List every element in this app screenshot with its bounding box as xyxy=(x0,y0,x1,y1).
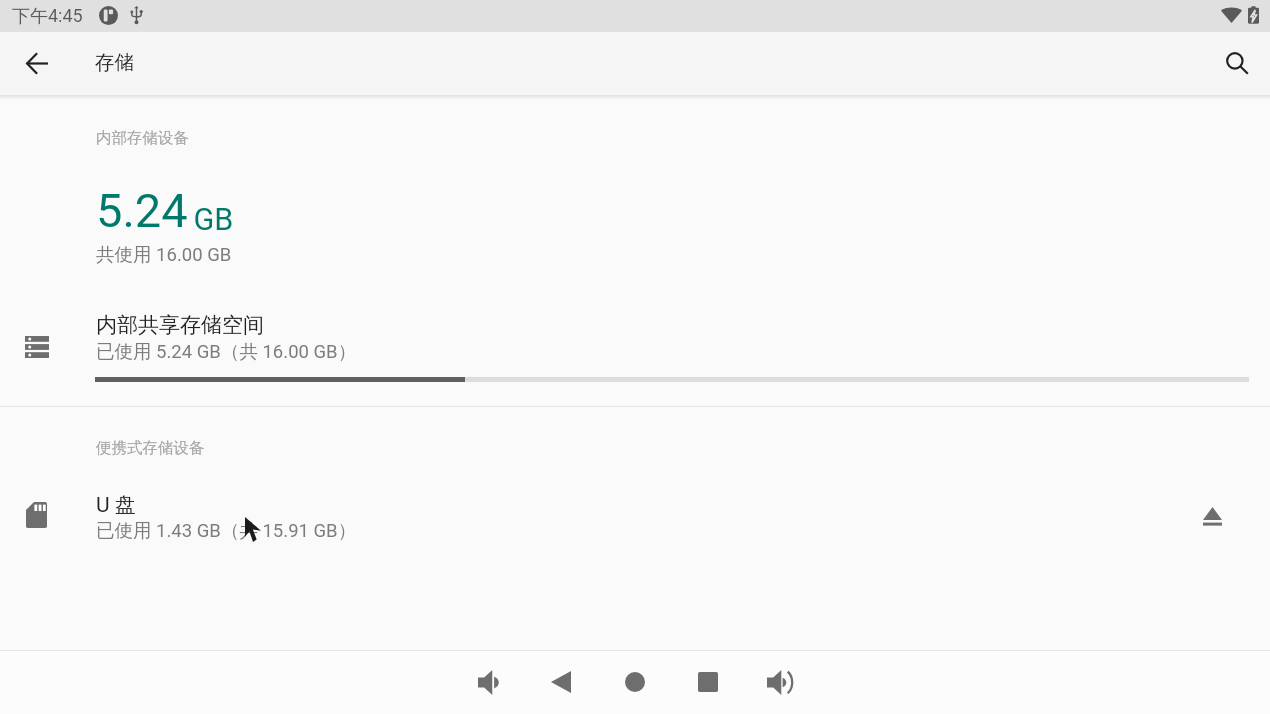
button[interactable]: Back xyxy=(537,658,585,706)
button[interactable]: Search xyxy=(1213,32,1261,95)
staticText: 内部存储设备 xyxy=(96,128,189,148)
button[interactable]: Volume down xyxy=(465,658,513,706)
staticText: 便携式存储设备 xyxy=(96,438,205,458)
button[interactable]: Home xyxy=(611,658,659,706)
button[interactable]: Eject xyxy=(1188,492,1236,540)
button[interactable]: 内部共享存储空间 xyxy=(0,300,1270,390)
staticText: 存储 xyxy=(95,50,134,75)
staticText: 5.24 xyxy=(96,183,188,238)
button[interactable]: U 盘 xyxy=(0,480,1186,550)
button[interactable]: Back xyxy=(13,32,61,95)
staticText: 下午4:45 xyxy=(12,5,83,28)
staticText: 共使用 16.00 GB xyxy=(96,243,232,266)
staticText: GB xyxy=(186,202,234,238)
button[interactable]: Volume up xyxy=(756,658,804,706)
button[interactable]: Recents xyxy=(684,658,732,706)
staticText: 内部共享存储空间 xyxy=(96,312,264,338)
staticText: 已使用 1.43 GB（共 15.91 GB） xyxy=(96,519,357,542)
staticText: 已使用 5.24 GB（共 16.00 GB） xyxy=(96,340,357,363)
staticText: U 盘 xyxy=(96,492,136,518)
